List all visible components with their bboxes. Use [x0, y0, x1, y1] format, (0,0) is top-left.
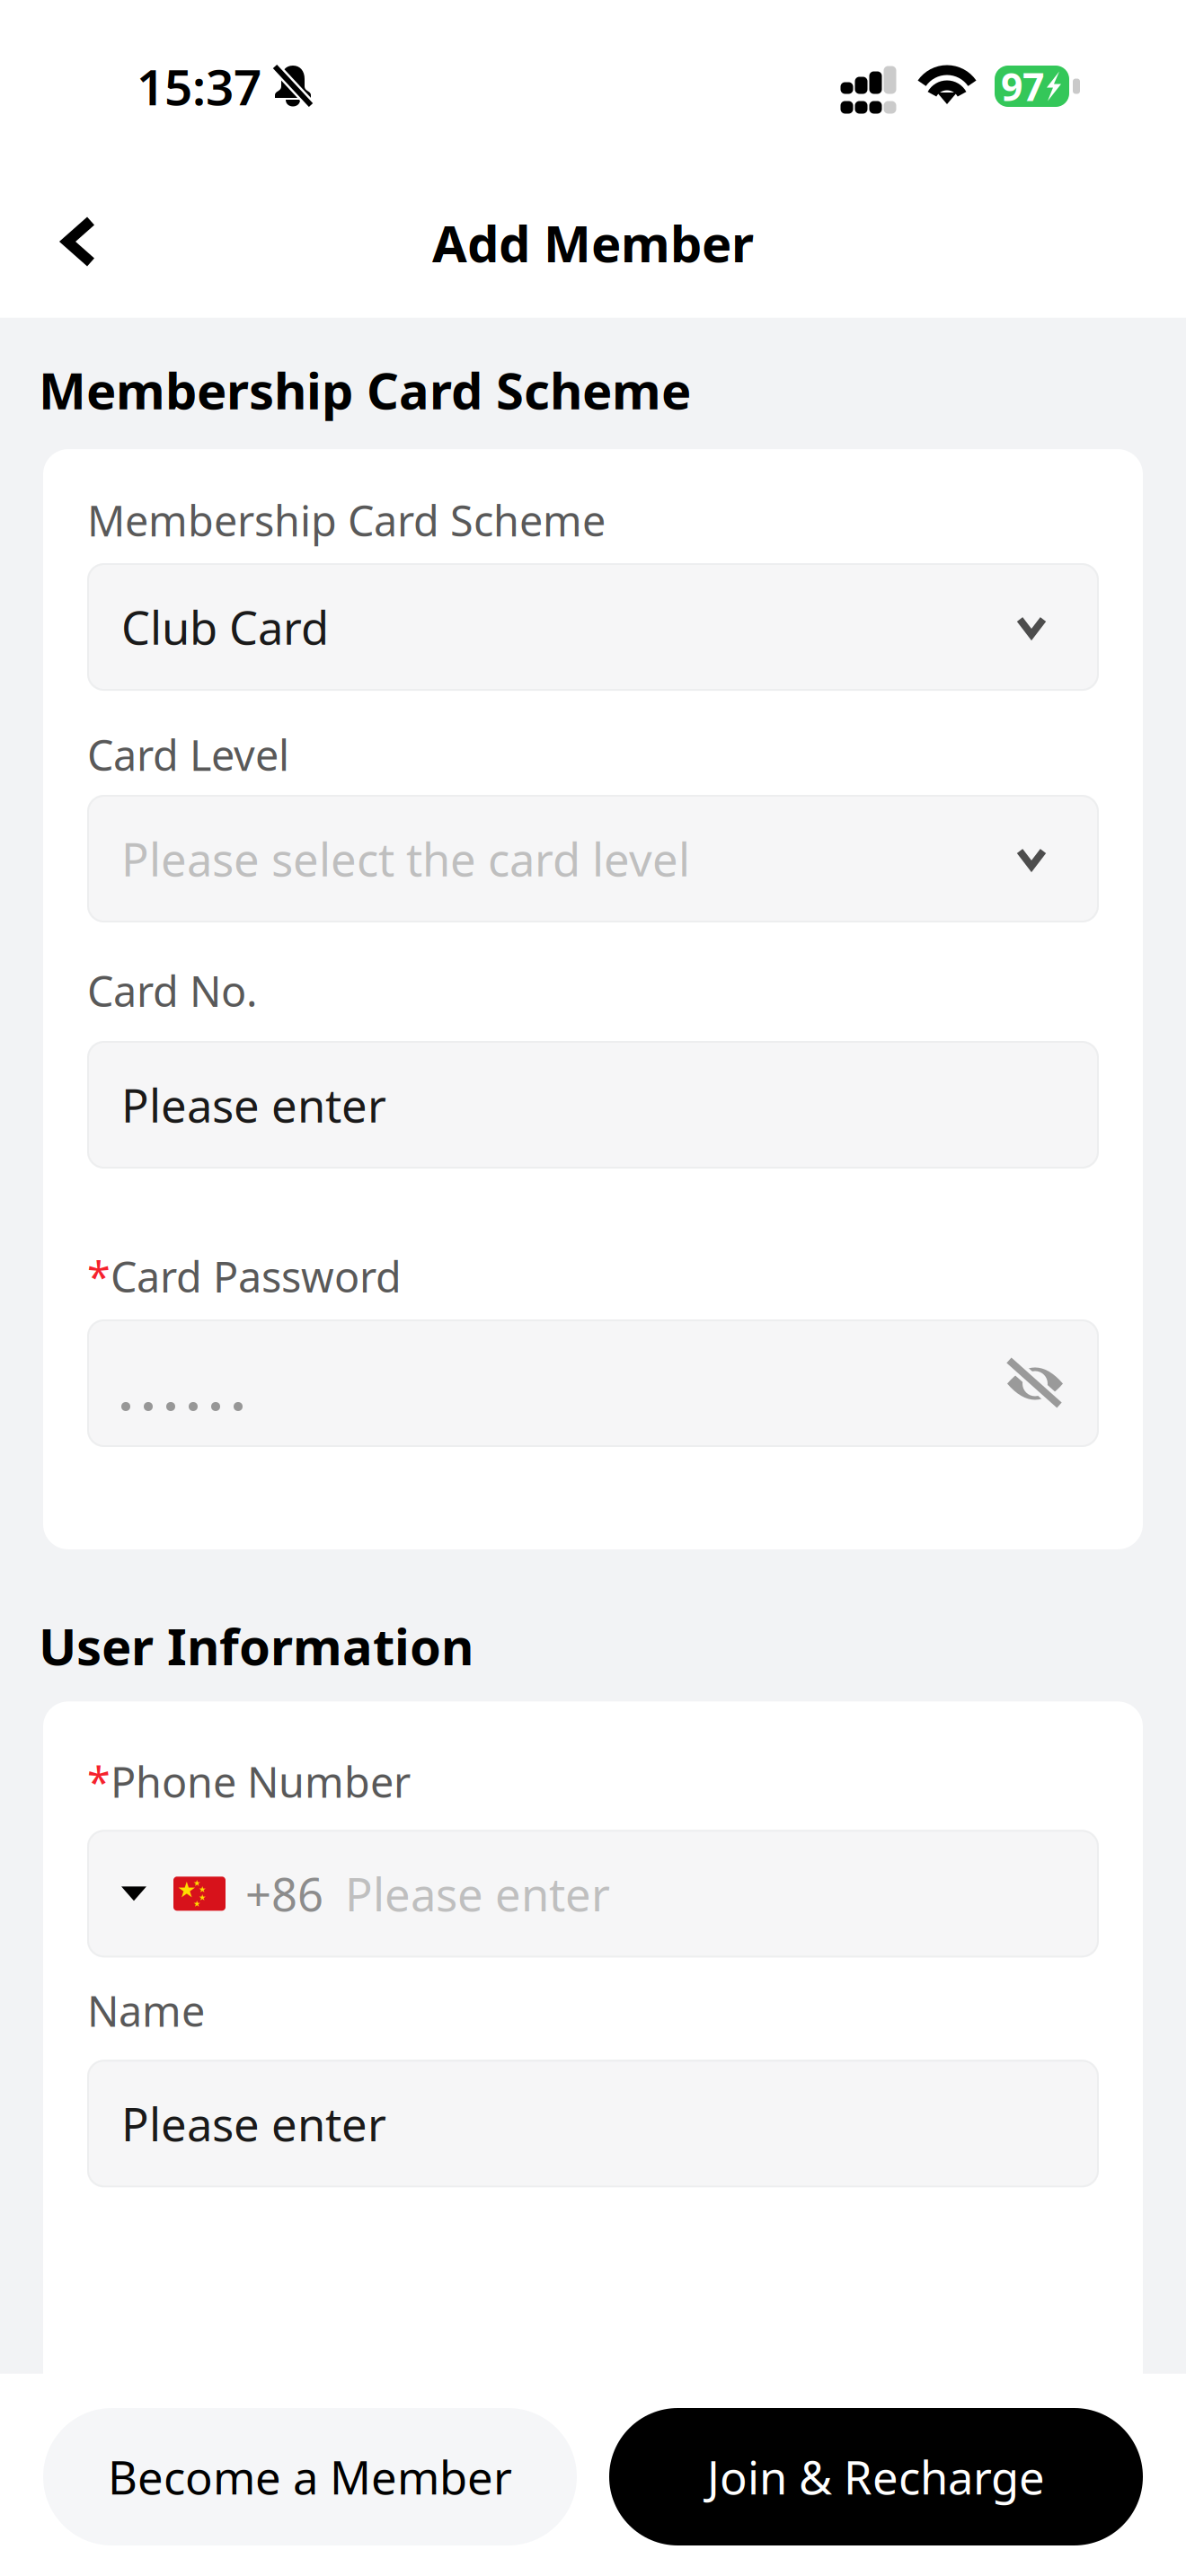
staticText: Membership Card Scheme: [39, 356, 691, 423]
staticText: 97: [1001, 61, 1044, 112]
staticText: Join & Recharge: [707, 2447, 1045, 2507]
staticText: 15:37: [137, 54, 261, 119]
staticText: ★: [193, 1899, 200, 1909]
staticText: Please enter: [121, 1075, 386, 1135]
button[interactable]: Back: [44, 198, 119, 295]
staticText: Card Level: [87, 727, 289, 782]
staticText: ★: [199, 1893, 206, 1902]
staticText: Phone Number: [111, 1754, 411, 1809]
staticText: Become a Member: [108, 2447, 512, 2507]
staticText: Card No.: [87, 963, 258, 1019]
button[interactable]: Please select the card level: [87, 795, 1099, 922]
button[interactable]: [87, 1319, 1099, 1447]
staticText: Card Password: [111, 1248, 402, 1304]
button[interactable]: Please enter: [87, 2060, 1099, 2187]
button[interactable]: Join & Recharge: [609, 2408, 1143, 2545]
staticText: Name: [87, 1983, 205, 2038]
staticText: *: [87, 1754, 111, 1809]
button[interactable]: Please enter: [87, 1041, 1099, 1169]
button[interactable]: ★: [87, 1830, 1099, 1957]
staticText: Club Card: [121, 597, 329, 657]
staticText: *: [87, 1248, 111, 1304]
staticText: ★: [199, 1885, 206, 1894]
staticText: ★: [193, 1878, 200, 1888]
staticText: +86: [245, 1863, 323, 1924]
button[interactable]: Become a Member: [43, 2408, 577, 2545]
staticText: User Information: [39, 1612, 474, 1679]
staticText: Add Member: [432, 209, 754, 276]
staticText: Please enter: [121, 2093, 386, 2154]
staticText: Membership Card Scheme: [87, 492, 606, 548]
staticText: Please select the card level: [121, 828, 690, 889]
button[interactable]: Club Card: [87, 563, 1099, 691]
staticText: ★: [177, 1877, 197, 1902]
staticText: Please enter: [345, 1863, 610, 1924]
